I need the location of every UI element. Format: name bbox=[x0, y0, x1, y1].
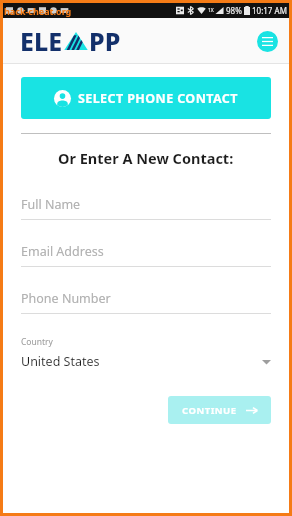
staticText: 10:17 AM bbox=[252, 5, 287, 16]
staticText: 98% bbox=[226, 5, 242, 16]
button[interactable]: Email Address bbox=[21, 243, 271, 267]
staticText: PP bbox=[89, 24, 121, 58]
staticText: 1X bbox=[208, 7, 214, 14]
staticText: Country bbox=[21, 336, 53, 348]
staticText: United States bbox=[21, 353, 100, 370]
button[interactable]: Open navigation menu bbox=[257, 31, 278, 52]
staticText: SELECT PHONE CONTACT bbox=[78, 90, 238, 107]
staticText: Or Enter A New Contact: bbox=[58, 148, 234, 168]
button[interactable]: Country bbox=[21, 336, 271, 370]
staticText: Email Address bbox=[21, 243, 104, 260]
staticText: Phone Number bbox=[21, 290, 111, 307]
button[interactable]: SELECT PHONE CONTACT bbox=[21, 77, 271, 119]
button[interactable]: ELE bbox=[20, 24, 121, 58]
button[interactable]: CONTINUE bbox=[168, 396, 271, 424]
staticText: Full Name bbox=[21, 196, 81, 213]
button[interactable]: Full Name bbox=[21, 196, 271, 220]
staticText: CONTINUE bbox=[182, 404, 237, 417]
staticText: ELE bbox=[20, 24, 63, 58]
staticText: hack-cheat.org bbox=[4, 5, 72, 17]
button[interactable]: Phone Number bbox=[21, 290, 271, 314]
